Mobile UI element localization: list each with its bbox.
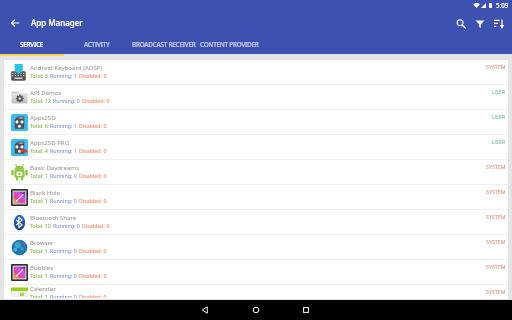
staticText: SYSTEM bbox=[486, 188, 506, 195]
staticText: Disabled: 0 bbox=[79, 122, 107, 129]
staticText: Black Hole bbox=[30, 188, 60, 196]
staticText: Total: 12 bbox=[30, 97, 53, 104]
staticText: Total: 1 bbox=[30, 272, 50, 279]
staticText: ACTIVITY bbox=[84, 40, 110, 49]
staticText: USER bbox=[492, 88, 506, 95]
staticText: Disabled: 0 bbox=[79, 293, 107, 298]
staticText: Total: 6 bbox=[30, 122, 50, 129]
button[interactable]: Recents bbox=[296, 300, 316, 320]
button[interactable]: ACTIVITY bbox=[64, 36, 129, 54]
staticText: Apps2SD bbox=[30, 113, 56, 121]
staticText: Running: 1 bbox=[50, 147, 79, 154]
button[interactable]: Black Hole bbox=[4, 185, 508, 209]
staticText: Total: 4 bbox=[30, 147, 50, 154]
staticText: Basic Daydreams bbox=[30, 163, 79, 171]
staticText: Android Keyboard (AOSP) bbox=[30, 63, 103, 71]
staticText: Running: 0 bbox=[50, 247, 79, 254]
button[interactable]: Back bbox=[7, 15, 23, 31]
button[interactable]: Bubbles bbox=[4, 260, 508, 284]
staticText: Total: 1 bbox=[30, 197, 50, 204]
staticText: Running: 1 bbox=[50, 122, 79, 129]
staticText: 5:09 bbox=[496, 1, 509, 9]
button[interactable]: Android Keyboard (AOSP) bbox=[4, 60, 508, 84]
staticText: Bubbles bbox=[30, 263, 54, 271]
button[interactable]: BROADCAST RECEIVER bbox=[129, 36, 198, 54]
staticText: SYSTEM bbox=[486, 163, 506, 170]
staticText: SYSTEM bbox=[486, 288, 506, 295]
staticText: Disabled: 0 bbox=[79, 72, 107, 79]
button[interactable]: Apps2SD bbox=[4, 110, 508, 134]
staticText: SYSTEM bbox=[486, 238, 506, 245]
staticText: Running: 0 bbox=[50, 197, 79, 204]
staticText: SERVICE bbox=[20, 40, 44, 49]
button[interactable]: Search bbox=[451, 13, 470, 35]
button[interactable]: Filter bbox=[470, 13, 489, 35]
staticText: Disabled: 0 bbox=[79, 247, 107, 254]
staticText: Browser bbox=[30, 238, 54, 246]
button[interactable]: Calendar bbox=[4, 285, 508, 299]
button[interactable]: Sort bbox=[489, 13, 508, 35]
staticText: Disabled: 0 bbox=[79, 172, 107, 179]
staticText: SYSTEM bbox=[486, 263, 506, 270]
button[interactable]: Bluetooth Share bbox=[4, 210, 508, 234]
staticText: Running: 0 bbox=[50, 172, 79, 179]
staticText: USER bbox=[492, 138, 506, 145]
button[interactable]: SERVICE bbox=[0, 36, 64, 54]
staticText: Running: 1 bbox=[50, 72, 79, 79]
button[interactable]: Back bbox=[195, 300, 215, 320]
button[interactable]: CONTENT PROVIDER bbox=[198, 36, 260, 54]
staticText: Bluetooth Share bbox=[30, 213, 77, 221]
staticText: Total: 1 bbox=[30, 172, 50, 179]
staticText: Total: 1 bbox=[30, 247, 50, 254]
staticText: Total: 10 bbox=[30, 222, 53, 229]
staticText: Running: 0 bbox=[50, 272, 79, 279]
staticText: Running: 0 bbox=[50, 293, 79, 298]
staticText: Disabled: 0 bbox=[82, 97, 110, 104]
staticText: Running: 0 bbox=[53, 222, 82, 229]
staticText: BROADCAST RECEIVER bbox=[132, 40, 196, 49]
staticText: SYSTEM bbox=[486, 63, 506, 70]
staticText: App Manager bbox=[31, 17, 83, 28]
staticText: Disabled: 0 bbox=[79, 272, 107, 279]
staticText: Calendar bbox=[30, 284, 56, 292]
staticText: API Demos bbox=[30, 88, 62, 96]
button[interactable]: Browser bbox=[4, 235, 508, 259]
staticText: Total: 1 bbox=[30, 293, 50, 298]
staticText: Disabled: 0 bbox=[79, 197, 107, 204]
staticText: CONTENT PROVIDER bbox=[200, 40, 259, 49]
button[interactable]: Apps2SD PRO bbox=[4, 135, 508, 159]
button[interactable]: Home bbox=[246, 300, 266, 320]
button[interactable]: API Demos bbox=[4, 85, 508, 109]
staticText: Disabled: 0 bbox=[82, 222, 110, 229]
button[interactable]: Basic Daydreams bbox=[4, 160, 508, 184]
staticText: SYSTEM bbox=[486, 213, 506, 220]
staticText: USER bbox=[492, 113, 506, 120]
staticText: Disabled: 0 bbox=[79, 147, 107, 154]
staticText: Apps2SD PRO bbox=[30, 138, 70, 146]
staticText: Total: 3 bbox=[30, 72, 50, 79]
staticText: Running: 0 bbox=[53, 97, 82, 104]
